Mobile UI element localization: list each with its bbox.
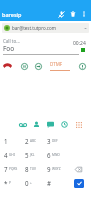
button[interactable]: * [4,176,25,190]
button[interactable]: Backspace [73,164,84,175]
staticText: baresip [2,11,22,18]
staticText: # [47,179,51,187]
button[interactable]: 1 [4,134,25,148]
button[interactable]: 6 [47,148,69,162]
button[interactable]: 9 [47,162,69,176]
button[interactable]: Hold [20,62,29,71]
staticText: DTMF [50,61,63,67]
button[interactable]: Delete [67,8,79,20]
staticText: 8 [25,165,29,173]
button[interactable]: 0 [25,176,47,190]
button[interactable]: Transfer call [34,62,43,71]
button[interactable]: 8 [25,162,47,176]
button[interactable]: 3 [47,134,69,148]
staticText: P [9,181,11,185]
button[interactable]: 4 [4,148,25,162]
button[interactable]: 7 [4,162,25,176]
button[interactable]: 2 [25,134,47,148]
staticText: 0 [25,179,29,187]
staticText: Call to... [3,38,20,44]
button[interactable]: Call history [59,119,70,130]
staticText: 1 [4,137,8,145]
staticText: WXYZ [52,167,61,171]
staticText: 9 [47,165,51,173]
button[interactable]: Call info [78,62,87,71]
button[interactable]: Voicemail [17,119,28,130]
staticText: PQRS [9,167,18,171]
button[interactable]: Mute microphone [55,8,67,20]
button[interactable]: Dialpad [73,119,84,130]
staticText: GHI [9,153,15,157]
staticText: Foo [3,44,15,53]
staticText: DEF [52,139,58,143]
button[interactable]: 5 [25,148,47,162]
button[interactable]: bar@test.tutpro.com [2,23,89,33]
staticText: MNO [52,153,60,157]
staticText: * [4,179,8,187]
staticText: + [30,181,32,185]
button[interactable]: Call [74,179,84,188]
staticText: 3 [47,137,51,145]
button[interactable]: More options [79,9,89,19]
staticText: 6 [47,151,51,159]
staticText: 5 [25,151,29,159]
staticText: 2 [25,137,29,145]
button[interactable]: Messages [45,119,56,130]
staticText: 00:24 [73,40,86,47]
staticText: JKL [30,153,35,157]
staticText: 4 [4,151,8,159]
staticText: 7 [4,165,8,173]
button[interactable]: Hang up [3,61,12,70]
button[interactable]: Contacts [31,119,42,130]
staticText: ABC [30,139,37,143]
staticText: bar@test.tutpro.com [12,25,56,31]
staticText: TUV [30,167,37,171]
button[interactable]: # [47,176,69,190]
